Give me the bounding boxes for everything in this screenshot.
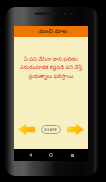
button[interactable]: మంచి మాట — [14, 26, 88, 37]
staticText: మంచి మాట — [39, 27, 68, 36]
button[interactable]: Recents — [67, 150, 77, 160]
button[interactable]: Next — [67, 124, 84, 135]
staticText: ఏ పని చేసినా దాని ఫలితం ఎదురుచూడక కష్టపడ… — [17, 55, 85, 80]
button[interactable]: SHARE — [41, 125, 61, 134]
button[interactable]: Home — [46, 150, 56, 160]
staticText: SHARE — [44, 127, 58, 133]
button[interactable]: Back — [25, 150, 35, 160]
button[interactable]: Previous — [18, 124, 35, 135]
